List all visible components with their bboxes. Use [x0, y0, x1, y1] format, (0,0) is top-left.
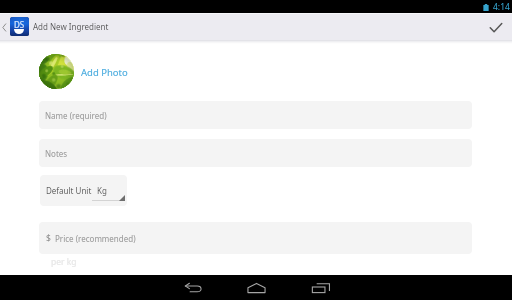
button[interactable]: Home: [243, 275, 269, 300]
button[interactable]: Notes: [39, 139, 472, 167]
staticText: Add New Ingredient: [33, 21, 109, 32]
button[interactable]: Recent apps: [308, 275, 334, 300]
staticText: per kg: [51, 256, 77, 268]
staticText: Price (recommended): [55, 233, 136, 244]
staticText: $: [46, 232, 51, 244]
button[interactable]: $: [39, 222, 472, 254]
staticText: Notes: [45, 148, 68, 159]
button[interactable]: Add Photo: [39, 54, 128, 89]
staticText: Add Photo: [81, 66, 128, 79]
button[interactable]: Default Unit: [40, 175, 127, 206]
button[interactable]: Done: [484, 15, 508, 39]
staticText: DS: [14, 19, 25, 30]
button[interactable]: Navigate up: [0, 13, 29, 39]
staticText: Default Unit: [46, 185, 92, 196]
staticText: Kg: [97, 185, 107, 196]
staticText: Name (required): [45, 110, 107, 121]
button[interactable]: Back: [180, 275, 206, 300]
button[interactable]: Name (required): [39, 101, 472, 129]
staticText: 4:14: [493, 1, 510, 13]
